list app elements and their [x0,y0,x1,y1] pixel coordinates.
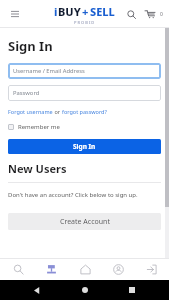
staticText: Create Account [60,217,110,227]
button[interactable]: Auctions [36,258,66,280]
staticText: New Users [8,161,67,176]
button[interactable]: Remember me [8,123,60,131]
button[interactable]: Search [124,7,138,21]
staticText: Password [13,89,40,97]
staticText: or [53,108,62,115]
button[interactable]: Account [103,258,133,280]
staticText: Don't have an account? Click below to si… [8,191,138,199]
button[interactable]: Cart [143,7,157,21]
button[interactable]: forgot password? [62,108,107,115]
staticText: forgot password? [62,108,107,115]
staticText: Remember me [18,123,60,131]
button[interactable]: Sign in [136,258,166,280]
button[interactable]: Back [27,280,47,300]
button[interactable]: Create Account [8,213,161,230]
button[interactable]: Menu [8,7,22,21]
staticText: Sign In [73,142,96,151]
staticText: i [54,4,58,19]
staticText: SELL [90,4,115,19]
button[interactable]: Search [3,258,33,280]
button[interactable]: Home [75,280,95,300]
staticText: Forgot username [8,108,53,115]
button[interactable]: Recents [122,280,142,300]
staticText: Sign In [8,37,53,55]
button[interactable]: Sign In [8,139,161,154]
button[interactable]: Username / Email Address [8,63,161,79]
staticText: BUY [58,4,81,19]
staticText: P R O B I D [74,20,95,25]
button[interactable]: Forgot username [8,108,53,115]
button[interactable]: Home [70,258,100,280]
staticText: 0 [160,11,163,18]
staticText: Username / Email Address [13,67,85,75]
staticText: + [82,4,89,19]
button[interactable]: Password [8,85,161,101]
